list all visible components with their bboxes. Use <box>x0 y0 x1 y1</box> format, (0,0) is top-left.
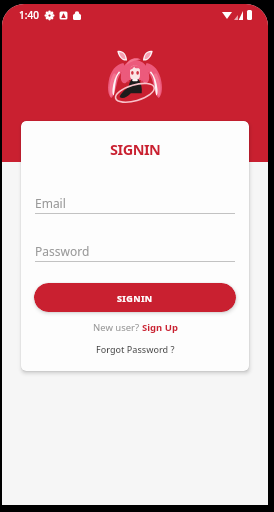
staticText: SIGNIN <box>117 292 153 304</box>
button[interactable]: Sign Up <box>142 321 178 334</box>
button[interactable]: Password <box>35 243 235 262</box>
staticText: Password <box>35 243 90 259</box>
staticText: Email <box>35 195 66 211</box>
staticText: Forgot Password ? <box>96 343 175 355</box>
staticText: SIGNIN <box>110 139 161 159</box>
staticText: 1:40 <box>19 8 39 22</box>
button[interactable]: Forgot Password ? <box>96 343 175 355</box>
staticText: New user? <box>93 321 142 334</box>
button[interactable]: SIGNIN <box>34 283 236 312</box>
staticText: Sign Up <box>142 321 178 334</box>
button[interactable]: Email <box>35 195 235 214</box>
